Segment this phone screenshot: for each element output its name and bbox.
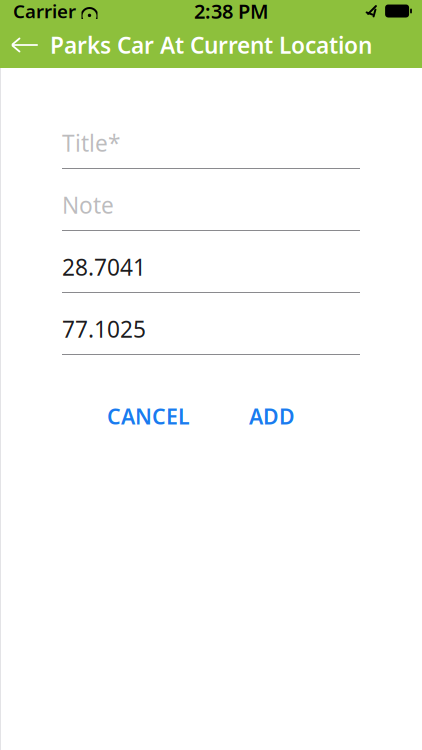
staticText: Note [62,190,114,220]
staticText: CANCEL [107,402,190,430]
staticText: 28.7041 [62,252,146,282]
button[interactable]: Back [0,23,50,67]
staticText: 2:38 PM [194,0,269,24]
button[interactable]: CANCEL [99,396,198,436]
staticText: ADD [249,402,295,430]
staticText: Title* [62,128,120,158]
staticText: Parks Car At Current Location [50,30,372,60]
staticText: 77.1025 [62,314,146,344]
staticText: Carrier [13,0,76,23]
button[interactable]: ADD [241,396,303,436]
